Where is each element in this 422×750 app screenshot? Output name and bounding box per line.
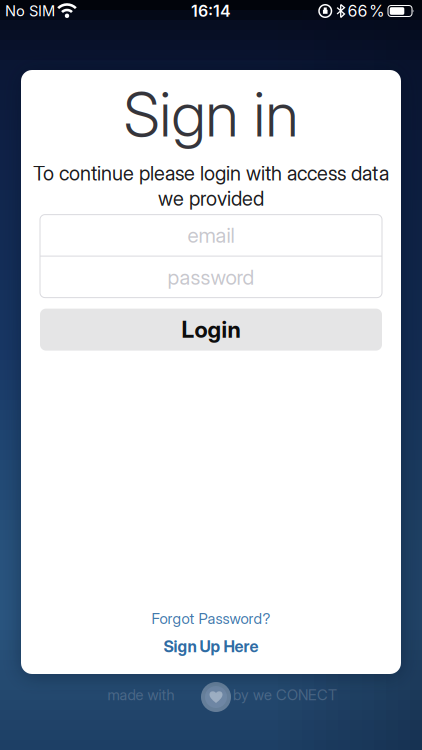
staticText: email: [187, 223, 234, 248]
button[interactable]: Login: [40, 309, 382, 351]
staticText: %: [369, 2, 385, 20]
staticText: password: [167, 265, 254, 290]
button[interactable]: Forgot Password?: [151, 609, 270, 628]
staticText: To continue please login with access dat…: [33, 161, 389, 185]
staticText: 66: [347, 2, 367, 20]
staticText: made with: [107, 686, 174, 704]
button[interactable]: password: [40, 257, 382, 298]
staticText: 16:14: [191, 2, 231, 20]
staticText: Forgot Password?: [151, 609, 270, 628]
staticText: we provided: [158, 186, 264, 211]
button[interactable]: Sign Up Here: [163, 637, 258, 656]
staticText: Sign in: [123, 77, 298, 151]
staticText: No SIM: [5, 2, 55, 20]
button[interactable]: email: [40, 215, 382, 256]
staticText: by we CONECT: [233, 686, 337, 704]
staticText: Sign Up Here: [163, 637, 258, 656]
staticText: Login: [181, 316, 240, 343]
